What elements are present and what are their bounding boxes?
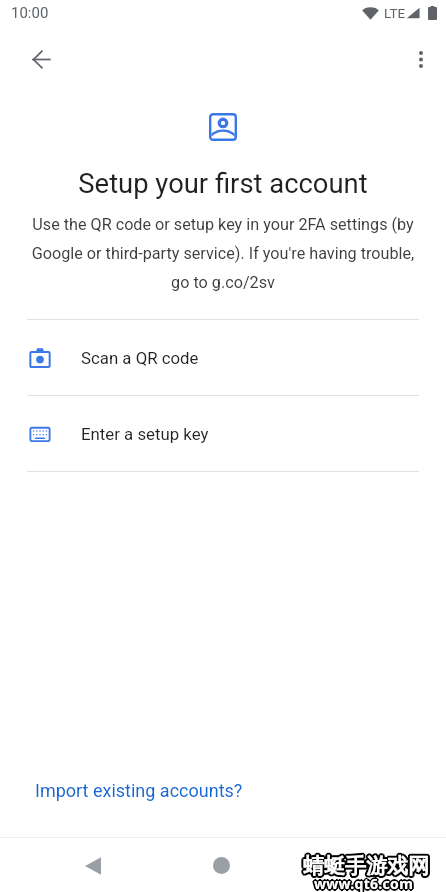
staticText: www.qt6.com bbox=[312, 874, 412, 892]
staticText: 蜻蜓手游戏网 bbox=[305, 854, 431, 880]
button[interactable]: Import existing accounts? bbox=[0, 770, 278, 811]
staticText: 蜻蜓手游戏网 bbox=[303, 855, 429, 881]
staticText: 蜻蜓手游戏网 bbox=[304, 855, 430, 881]
staticText: Use the QR code or setup key in your 2FA… bbox=[0, 215, 446, 292]
staticText: www.qt6.com bbox=[313, 873, 413, 892]
staticText: www.qt6.com bbox=[313, 875, 413, 892]
staticText: Import existing accounts? bbox=[35, 780, 243, 801]
staticText: www.qt6.com bbox=[314, 872, 414, 891]
button[interactable]: Enter a setup key bbox=[0, 396, 446, 471]
staticText: www.qt6.com bbox=[314, 874, 414, 892]
staticText: 蜻蜓手游戏网 bbox=[301, 854, 427, 880]
staticText: 10:00 bbox=[11, 4, 49, 22]
staticText: www.qt6.com bbox=[315, 873, 415, 892]
staticText: 蜻蜓手游戏网 bbox=[302, 855, 428, 881]
staticText: Enter a setup key bbox=[81, 424, 209, 444]
staticText: Scan a QR code bbox=[81, 348, 199, 368]
button[interactable]: Home bbox=[187, 837, 255, 892]
staticText: 蜻蜓手游戏网 bbox=[301, 852, 427, 878]
staticText: www.qt6.com bbox=[314, 876, 414, 892]
staticText: 蜻蜓手游戏网 bbox=[304, 851, 430, 877]
staticText: 蜻蜓手游戏网 bbox=[301, 853, 427, 879]
button[interactable]: Back bbox=[59, 837, 127, 892]
button[interactable]: Back bbox=[13, 31, 69, 87]
button[interactable]: Recent apps bbox=[313, 837, 381, 892]
staticText: 蜻蜓手游戏网 bbox=[303, 853, 429, 879]
staticText: 蜻蜓手游戏网 bbox=[305, 852, 431, 878]
staticText: www.qt6.com bbox=[313, 873, 413, 892]
staticText: 蜻蜓手游戏网 bbox=[305, 853, 431, 879]
staticText: www.qt6.com bbox=[313, 875, 413, 892]
staticText: 蜻蜓手游戏网 bbox=[302, 851, 428, 877]
staticText: www.qt6.com bbox=[315, 873, 415, 892]
staticText: LTE bbox=[384, 5, 406, 21]
staticText: www.qt6.com bbox=[315, 875, 415, 892]
staticText: www.qt6.com bbox=[316, 874, 416, 892]
staticText: www.qt6.com bbox=[315, 875, 415, 892]
staticText: Setup your first account bbox=[0, 168, 446, 200]
button[interactable]: More options bbox=[397, 35, 445, 83]
button[interactable]: Scan a QR code bbox=[0, 320, 446, 395]
staticText: 蜻蜓手游戏网 bbox=[303, 851, 429, 877]
